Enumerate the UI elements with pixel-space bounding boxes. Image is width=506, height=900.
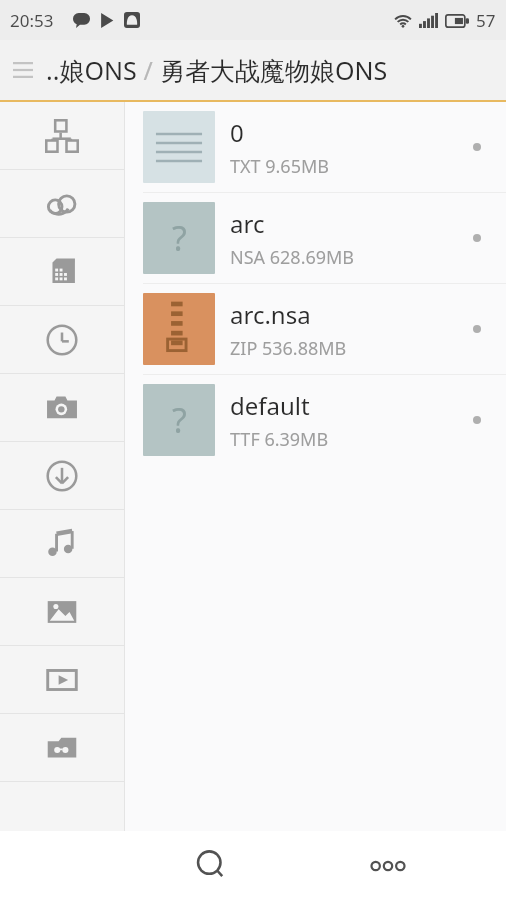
button[interactable]: Apps bbox=[0, 102, 124, 170]
staticText: ? bbox=[172, 215, 187, 261]
staticText: arc bbox=[230, 207, 265, 240]
staticText: TXT 9.65MB bbox=[230, 154, 329, 179]
staticText: 勇者大战魔物娘ONS bbox=[160, 53, 388, 87]
button[interactable]: Search bbox=[124, 831, 300, 900]
button[interactable]: Downloads bbox=[0, 442, 124, 510]
staticText: ..娘ONS bbox=[46, 53, 137, 87]
button[interactable]: Storage bbox=[0, 238, 124, 306]
staticText: default bbox=[230, 389, 310, 422]
staticText: TTF 6.39MB bbox=[230, 427, 329, 452]
button[interactable]: Music bbox=[0, 510, 124, 578]
button[interactable]: More options for 0 bbox=[448, 102, 506, 192]
button[interactable]: Recent bbox=[0, 306, 124, 374]
button[interactable]: Documents bbox=[0, 714, 124, 782]
staticText: arc.nsa bbox=[230, 298, 311, 331]
button[interactable]: arc.nsa bbox=[125, 284, 506, 374]
button[interactable]: Menu bbox=[0, 40, 46, 100]
staticText: 0 bbox=[230, 116, 244, 149]
staticText: NSA 628.69MB bbox=[230, 245, 355, 270]
button[interactable]: More options for arc bbox=[448, 193, 506, 283]
staticText: ZIP 536.88MB bbox=[230, 336, 347, 361]
button[interactable]: Videos bbox=[0, 646, 124, 714]
button[interactable]: More options for arc.nsa bbox=[448, 284, 506, 374]
button[interactable]: ? bbox=[125, 375, 506, 465]
button[interactable]: More options for default bbox=[448, 375, 506, 465]
staticText: 57 bbox=[476, 9, 496, 32]
button[interactable]: Camera bbox=[0, 374, 124, 442]
staticText: / bbox=[137, 53, 160, 87]
staticText: ? bbox=[172, 397, 187, 443]
button[interactable]: More bbox=[300, 831, 476, 900]
button[interactable]: 0 bbox=[125, 102, 506, 192]
button[interactable]: Pictures bbox=[0, 578, 124, 646]
staticText: 20:53 bbox=[10, 9, 54, 32]
button[interactable]: ? bbox=[125, 193, 506, 283]
button[interactable]: Cloud bbox=[0, 170, 124, 238]
